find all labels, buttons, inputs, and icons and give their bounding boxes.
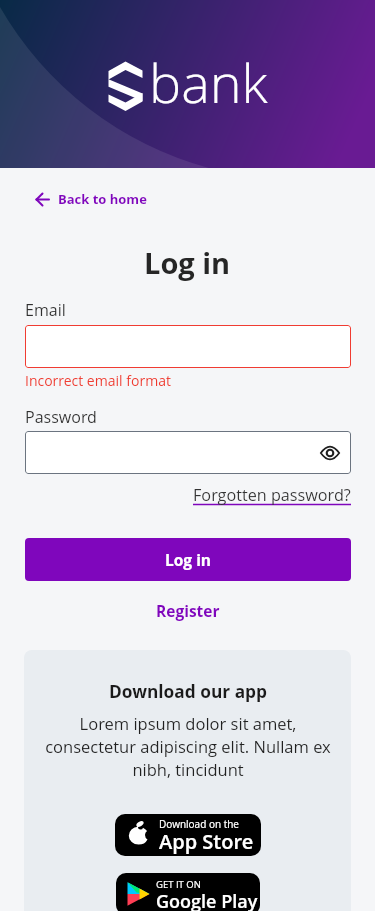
button[interactable]: Forgotten password? [193,484,351,506]
staticText: Back to home [58,190,147,208]
staticText: Email [25,299,66,321]
button[interactable] [25,325,351,368]
staticText: GET IT ON [156,878,201,891]
staticText: Log in [144,243,231,282]
staticText: Log in [165,549,212,570]
staticText: Google Play [156,889,258,911]
button[interactable]: Log in [25,538,351,581]
staticText: Incorrect email format [25,371,171,390]
button[interactable] [309,431,351,474]
staticText: Download our app [109,680,267,704]
staticText: Download on the [159,817,239,831]
staticText: Forgotten password? [193,484,351,506]
button[interactable]: GET IT ON [116,873,260,911]
staticText: Lorem ipsum dolor sit amet, consectetur … [45,712,331,781]
staticText: bank [149,45,268,119]
staticText: App Store [159,828,254,855]
staticText: Password [25,406,97,428]
button[interactable]: Download on the [115,814,261,856]
button[interactable]: Register [156,600,220,621]
staticText: Register [156,600,220,621]
button[interactable]: Back to home [35,190,147,208]
button[interactable] [25,431,351,474]
